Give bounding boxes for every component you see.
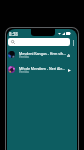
button[interactable]: Play [64,66,74,80]
button[interactable]: Search [8,38,70,46]
staticText: Yenitta [19,70,29,74]
button[interactable]: Mfode Mendem - Neri Aleu fihoem nurit [7,65,77,80]
button[interactable]: Now playing [64,51,74,65]
button[interactable]: Mesdeni Kangas - Hrm sihuoft rdenuim fa [7,50,77,65]
staticText: Yenitta [19,55,29,59]
staticText: 8:38 [9,31,18,37]
staticText: Mfode Mendem - Neri Aleu fihoem nurit [19,66,66,71]
staticText: Mesdeni Kangas - Hrm sihuoft rdenuim fa [19,51,66,56]
